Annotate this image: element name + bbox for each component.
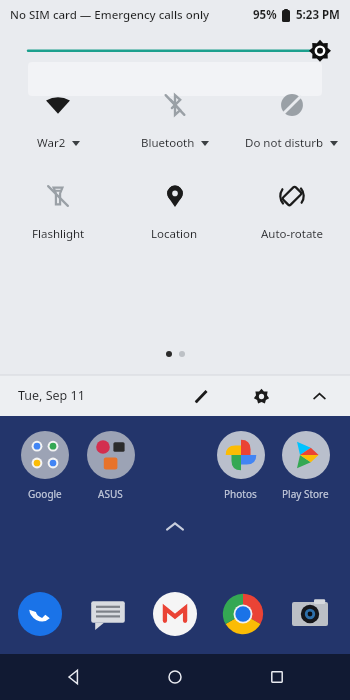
staticText: Auto-rotate (261, 226, 323, 242)
button[interactable]: Google (12, 430, 78, 501)
button[interactable]: Settings (246, 381, 276, 411)
staticText: Photos (224, 487, 257, 501)
button[interactable]: Home (146, 654, 204, 700)
button[interactable]: Recents (248, 654, 306, 700)
button[interactable]: Edit (186, 381, 216, 411)
staticText: 5:23 PM (296, 7, 340, 23)
staticText: Google (28, 487, 62, 501)
button[interactable]: Photos (208, 430, 273, 501)
staticText: ASUS (98, 487, 123, 501)
staticText: Do not disturb (245, 135, 324, 151)
button[interactable]: Brightness (0, 30, 350, 70)
staticText: War2 (37, 135, 66, 151)
button[interactable]: Do not disturb (233, 88, 350, 151)
staticText: No SIM card — Emergency calls only (10, 7, 210, 23)
staticText: Play Store (282, 487, 329, 501)
staticText: Location (151, 226, 198, 242)
button[interactable]: Phone (14, 588, 66, 640)
button[interactable]: Flashlight (0, 179, 116, 242)
button[interactable]: ASUS (78, 430, 143, 501)
button[interactable]: Open app drawer (0, 517, 350, 535)
button[interactable]: Chrome (217, 588, 269, 640)
button[interactable]: Camera (284, 588, 336, 640)
staticText: Bluetooth (141, 135, 195, 151)
staticText: 95% (253, 7, 277, 23)
button[interactable]: War2 (0, 88, 116, 151)
staticText: Tue, Sep 11 (18, 387, 85, 404)
button[interactable]: Location (116, 179, 233, 242)
button[interactable]: Back (44, 654, 102, 700)
button[interactable]: Play Store (273, 430, 338, 501)
button[interactable]: Bluetooth (116, 88, 233, 151)
button[interactable]: Collapse (304, 381, 334, 411)
staticText: Flashlight (32, 226, 85, 242)
button[interactable]: Gmail (149, 588, 201, 640)
button[interactable]: Messages (82, 588, 134, 640)
button[interactable]: Auto-rotate (233, 179, 350, 242)
